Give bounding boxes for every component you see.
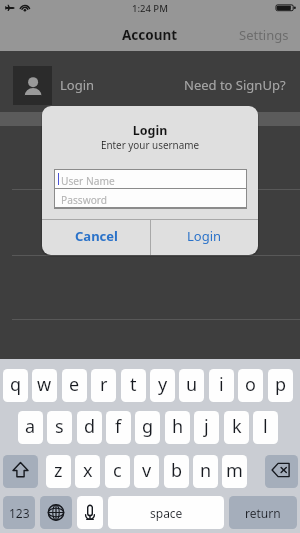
staticText: v <box>142 458 152 483</box>
staticText: Account <box>122 26 178 44</box>
button[interactable]: e <box>62 369 87 402</box>
staticText: return <box>245 505 281 521</box>
staticText: s <box>55 414 64 439</box>
button[interactable]: y <box>150 369 175 402</box>
staticText: x <box>83 458 93 483</box>
staticText: w <box>37 372 52 397</box>
staticText: Password <box>61 193 108 207</box>
button[interactable]: k <box>224 411 249 444</box>
button[interactable]: p <box>268 369 293 402</box>
staticText: b <box>171 458 183 483</box>
button[interactable]: User Name <box>55 170 246 188</box>
staticText: c <box>113 458 122 483</box>
button[interactable]: l <box>253 411 278 444</box>
button[interactable]: n <box>193 455 218 488</box>
staticText: z <box>54 458 63 483</box>
staticText: Login <box>42 122 258 139</box>
button[interactable]: Shift <box>3 455 38 488</box>
staticText: Login <box>187 227 222 245</box>
button[interactable]: r <box>91 369 116 402</box>
staticText: a <box>25 414 36 439</box>
staticText: Cancel <box>75 227 118 245</box>
button[interactable]: q <box>3 369 28 402</box>
staticText: o <box>245 372 256 397</box>
staticText: Settings <box>239 26 289 44</box>
staticText: n <box>200 458 212 483</box>
button[interactable]: h <box>165 411 190 444</box>
staticText: d <box>84 414 96 439</box>
button[interactable]: s <box>47 411 72 444</box>
button[interactable]: m <box>222 455 247 488</box>
button[interactable]: o <box>238 369 263 402</box>
button[interactable]: c <box>105 455 130 488</box>
button[interactable]: Login <box>0 51 300 112</box>
button[interactable]: a <box>18 411 43 444</box>
button[interactable]: x <box>75 455 100 488</box>
button[interactable]: f <box>106 411 131 444</box>
button[interactable]: z <box>46 455 71 488</box>
button[interactable]: j <box>194 411 219 444</box>
button[interactable]: Cancel <box>42 220 150 255</box>
staticText: Login <box>60 76 95 94</box>
staticText: j <box>204 414 209 439</box>
staticText: l <box>263 414 268 439</box>
button[interactable]: v <box>134 455 159 488</box>
staticText: h <box>172 414 184 439</box>
button[interactable]: Login <box>151 220 258 255</box>
staticText: i <box>219 372 224 397</box>
staticText: m <box>226 458 243 483</box>
staticText: p <box>275 372 287 397</box>
staticText: 123 <box>9 505 30 521</box>
staticText: space <box>150 505 183 521</box>
staticText: u <box>186 372 198 397</box>
button[interactable]: Dictation <box>77 496 103 529</box>
staticText: y <box>158 372 168 397</box>
button[interactable]: Next keyboard <box>40 496 72 529</box>
staticText: q <box>10 372 22 397</box>
staticText: User Name <box>61 174 115 188</box>
staticText: Need to SignUp? <box>184 76 286 94</box>
staticText: t <box>130 372 137 397</box>
button[interactable]: t <box>121 369 146 402</box>
staticText: 1:24 PM <box>132 2 168 15</box>
button[interactable]: i <box>209 369 234 402</box>
button[interactable]: w <box>32 369 57 402</box>
button[interactable]: b <box>164 455 189 488</box>
staticText: e <box>69 372 80 397</box>
button[interactable]: space <box>108 496 224 529</box>
staticText: g <box>142 414 154 439</box>
staticText: r <box>100 372 108 397</box>
button[interactable]: Backspace <box>265 455 298 488</box>
button[interactable]: return <box>229 496 297 529</box>
staticText: k <box>232 414 242 439</box>
button[interactable]: g <box>135 411 160 444</box>
button[interactable]: Settings <box>228 20 300 50</box>
staticText: Enter your username <box>42 138 258 151</box>
button[interactable]: d <box>77 411 102 444</box>
button[interactable]: Password <box>55 189 246 207</box>
staticText: f <box>115 414 122 439</box>
button[interactable]: u <box>179 369 204 402</box>
button[interactable]: 123 <box>3 496 35 529</box>
